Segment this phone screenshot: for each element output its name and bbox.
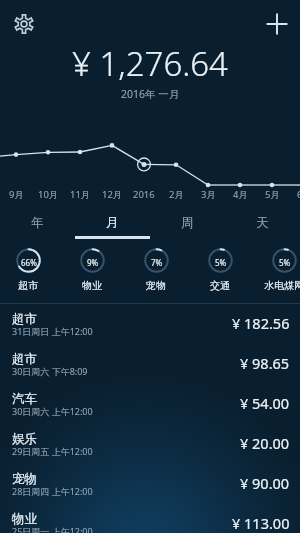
staticText: 水电煤网	[264, 279, 300, 292]
staticText: ¥ 1,276.64	[72, 41, 228, 86]
button[interactable]: 9%	[60, 248, 124, 292]
staticText: 6月	[297, 188, 300, 201]
button[interactable]: 5%	[252, 248, 300, 292]
staticText: 物业	[82, 279, 102, 292]
staticText: 汽车	[12, 391, 37, 407]
staticText: ¥ 113.00	[232, 513, 290, 533]
staticText: 30日周六 上午12:00	[12, 405, 93, 417]
button[interactable]: 天	[225, 206, 300, 240]
staticText: 2016年 一月	[121, 87, 180, 101]
staticText: 年	[31, 215, 44, 231]
staticText: ¥ 54.00	[240, 393, 290, 413]
staticText: 7%	[151, 257, 163, 268]
button[interactable]: Settings	[10, 10, 38, 38]
staticText: 31日周日 上午12:00	[12, 325, 93, 337]
button[interactable]: 月	[75, 206, 150, 240]
staticText: 28日周四 上午12:00	[12, 485, 93, 497]
staticText: 66%	[21, 257, 37, 268]
button[interactable]: 66%	[0, 248, 60, 292]
staticText: 2月	[169, 188, 184, 201]
button[interactable]: 7%	[124, 248, 188, 292]
staticText: 超市	[12, 311, 37, 327]
staticText: 3月	[201, 188, 216, 201]
staticText: 12月	[102, 188, 123, 201]
button[interactable]: 周	[150, 206, 225, 240]
staticText: 超市	[12, 351, 37, 367]
button[interactable]: 超市	[0, 305, 300, 345]
staticText: 25日周一 上午12:00	[12, 525, 93, 533]
staticText: 物业	[12, 511, 37, 527]
button[interactable]: Add	[263, 10, 291, 38]
button[interactable]: 宠物	[0, 465, 300, 505]
staticText: 5%	[215, 257, 227, 268]
staticText: ¥ 98.65	[240, 353, 290, 373]
staticText: 交通	[210, 279, 230, 292]
staticText: 9%	[87, 257, 99, 268]
staticText: 11月	[70, 188, 91, 201]
staticText: 29日周五 上午12:00	[12, 445, 93, 457]
staticText: 10月	[38, 188, 59, 201]
button[interactable]: 5%	[188, 248, 252, 292]
staticText: 30日周六 下午8:09	[12, 365, 88, 377]
staticText: 宠物	[146, 279, 166, 292]
button[interactable]: 汽车	[0, 385, 300, 425]
staticText: 天	[256, 215, 269, 231]
staticText: ¥ 20.00	[240, 433, 290, 453]
staticText: 月	[106, 215, 119, 231]
button[interactable]: 物业	[0, 505, 300, 533]
staticText: 超市	[18, 279, 38, 292]
staticText: 4月	[233, 188, 248, 201]
button[interactable]: 年	[0, 206, 75, 240]
staticText: ¥ 90.00	[240, 473, 290, 493]
staticText: 2016	[133, 188, 155, 201]
staticText: 宠物	[12, 471, 37, 487]
button[interactable]: 超市	[0, 345, 300, 385]
staticText: 周	[181, 215, 194, 231]
button[interactable]: 娱乐	[0, 425, 300, 465]
staticText: 5月	[265, 188, 280, 201]
staticText: ¥ 182.56	[232, 313, 290, 333]
staticText: 9月	[9, 188, 24, 201]
staticText: 5%	[279, 257, 291, 268]
staticText: 娱乐	[12, 431, 37, 447]
